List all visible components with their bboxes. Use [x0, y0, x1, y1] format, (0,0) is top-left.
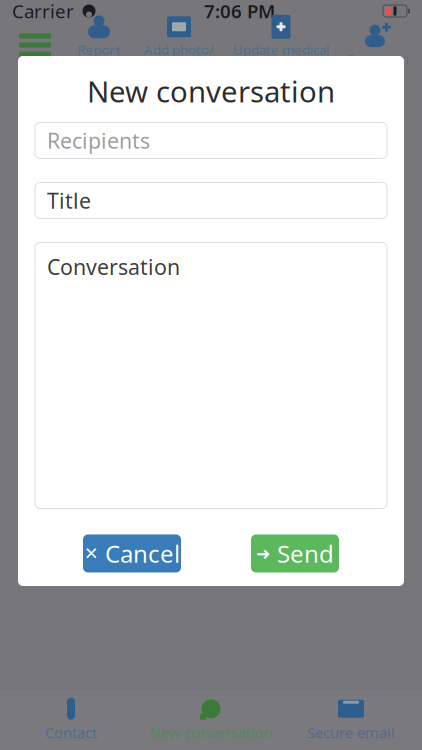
staticText: ➜ — [256, 544, 271, 563]
staticText: New conversation — [87, 71, 335, 110]
button[interactable]: Conversation — [35, 242, 387, 508]
staticText: Update medical history — [233, 41, 329, 76]
staticText: Jim Smith — [172, 74, 249, 97]
staticText: New conversation — [149, 723, 272, 742]
button[interactable]: New conversation — [141, 691, 281, 749]
button[interactable]: Title — [35, 182, 387, 218]
staticText: Add photo/file — [144, 41, 214, 76]
button[interactable]: Menu — [10, 22, 60, 68]
button[interactable]: Contact — [1, 691, 141, 749]
staticText: Cancel — [105, 537, 180, 569]
staticText: Contact — [45, 723, 97, 742]
button[interactable]: Report injury — [60, 22, 138, 68]
button[interactable]: Secure email — [281, 691, 421, 749]
staticText: Recipients — [47, 126, 150, 155]
staticText: Send — [277, 537, 334, 569]
staticText: Conversation — [47, 252, 180, 281]
staticText: Title — [47, 186, 91, 215]
button[interactable]: Add photo/file — [138, 22, 220, 68]
staticText: Carrier — [12, 0, 74, 23]
staticText: Care team — [345, 50, 408, 67]
button[interactable]: ✕ — [83, 534, 181, 572]
staticText: Report injury — [77, 41, 120, 76]
button[interactable]: Recipients — [35, 122, 387, 158]
button[interactable]: Care team — [342, 22, 412, 68]
button[interactable]: Jim Smith — [152, 71, 269, 100]
button[interactable]: ➜ — [251, 534, 339, 572]
staticText: 7:06 PM — [204, 0, 275, 23]
staticText: ✕ — [84, 544, 99, 563]
staticText: Secure email — [307, 723, 395, 742]
button[interactable]: Update medical history — [220, 22, 342, 68]
